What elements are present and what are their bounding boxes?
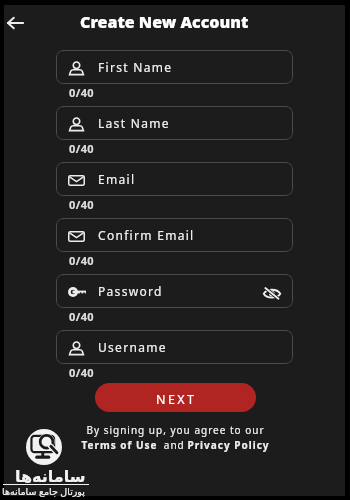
button[interactable]: NEXT [95, 383, 256, 412]
staticText: Password [98, 283, 163, 299]
staticText: 0/40 [69, 253, 95, 268]
staticText: and [158, 438, 187, 452]
button[interactable]: Username [56, 330, 293, 364]
button[interactable]: Toggle password visibility [261, 282, 283, 304]
staticText: Username [98, 339, 167, 355]
button[interactable]: Terms of Use [81, 438, 158, 452]
button[interactable]: Email [56, 162, 293, 196]
button[interactable]: First Name [56, 50, 293, 84]
staticText: Confirm Email [98, 227, 195, 243]
button[interactable]: Password [56, 274, 293, 308]
staticText: 0/40 [69, 141, 95, 156]
button[interactable]: Privacy Policy [187, 438, 270, 452]
staticText: NEXT [156, 391, 197, 408]
staticText: By signing up, you agree to our [86, 423, 265, 437]
staticText: First Name [98, 59, 173, 75]
staticText: سامانه‌ها [15, 467, 86, 486]
staticText: 0/40 [69, 197, 95, 212]
staticText: Email [98, 171, 136, 187]
staticText: پورتال جامع سامانه‌ها [2, 485, 85, 498]
staticText: Last Name [98, 115, 170, 131]
staticText: 0/40 [69, 309, 95, 324]
button[interactable]: Confirm Email [56, 218, 293, 252]
button[interactable]: Back [3, 11, 27, 35]
button[interactable]: Last Name [56, 106, 293, 140]
staticText: 0/40 [69, 365, 95, 380]
other: Toggle password visibility [263, 288, 281, 299]
staticText: 0/40 [69, 85, 95, 100]
staticText: Create New Account [80, 11, 249, 33]
